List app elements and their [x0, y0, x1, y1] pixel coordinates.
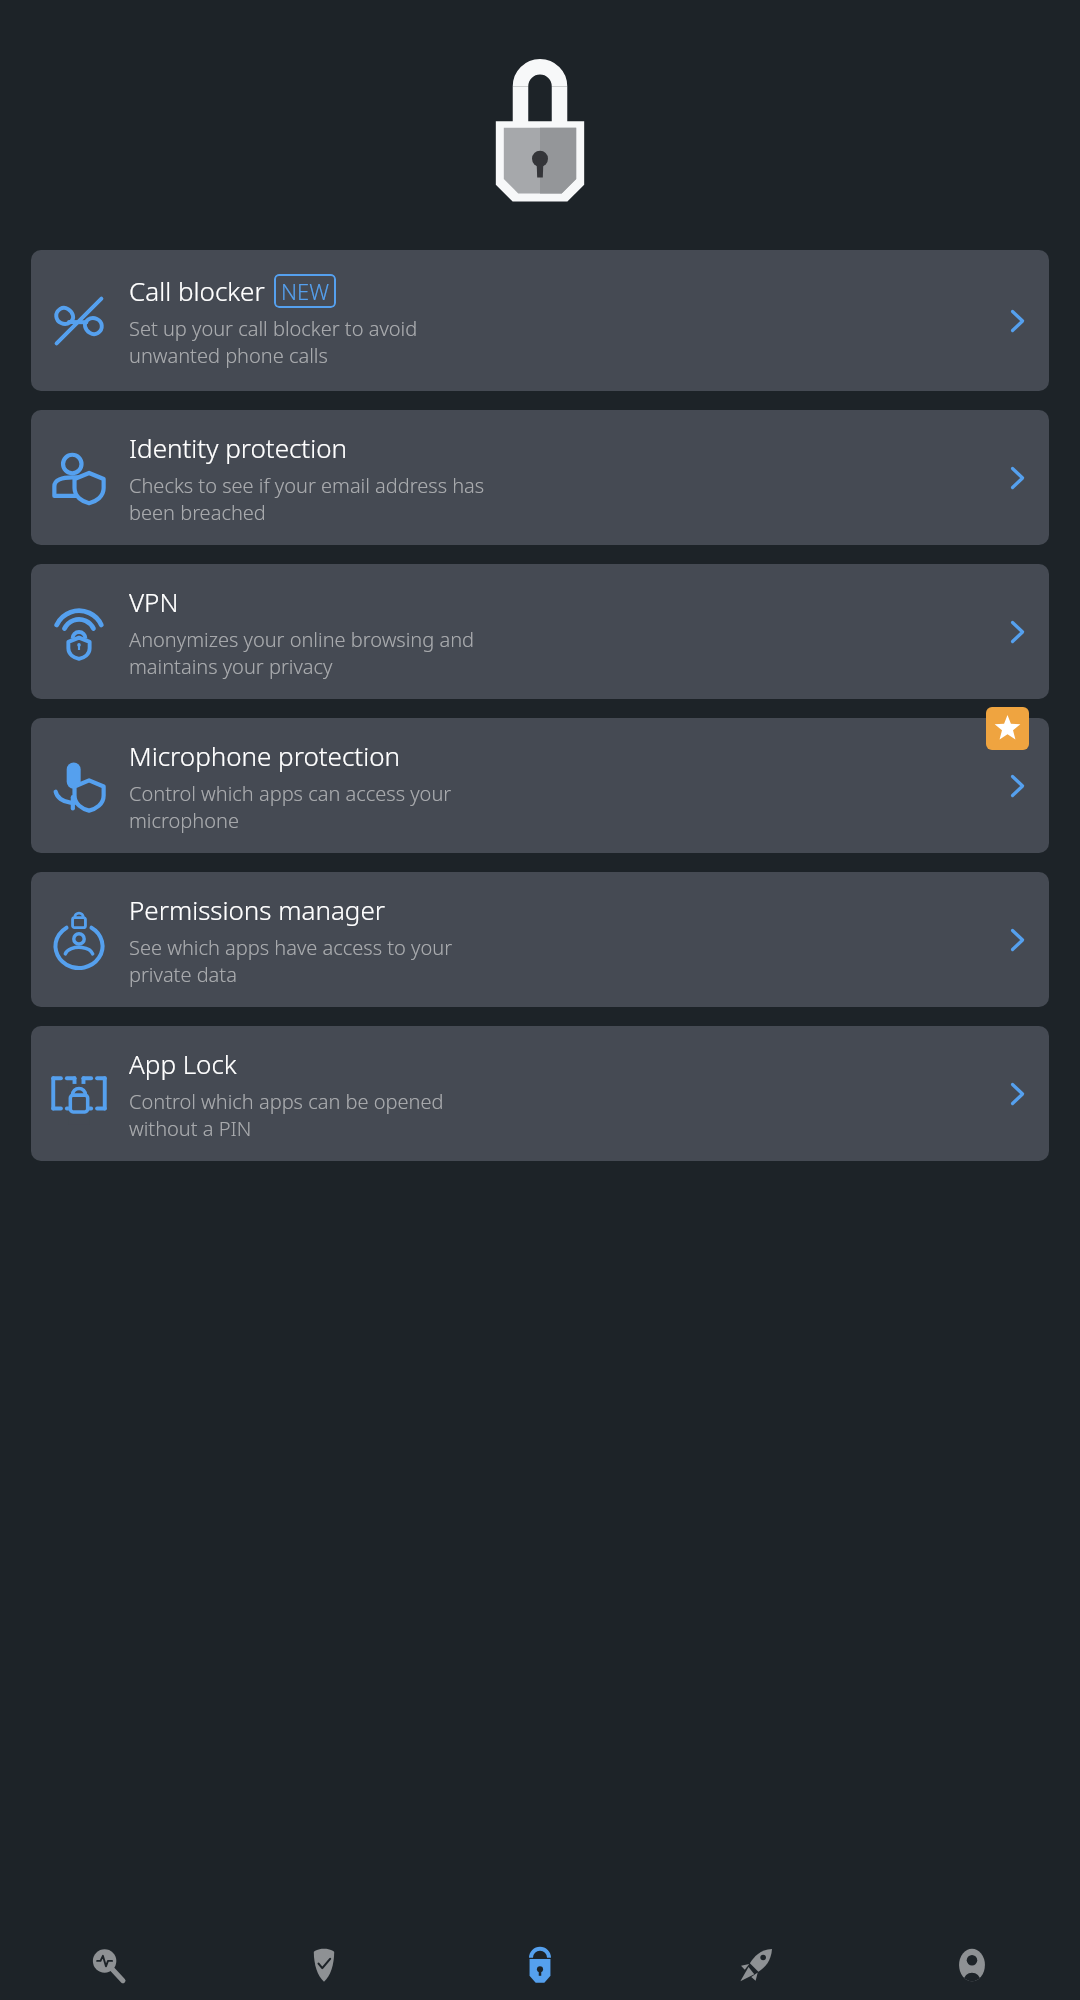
staticText: Checks to see if your email address has … [129, 472, 485, 526]
button[interactable]: Call blocker [31, 250, 1049, 391]
button[interactable]: Premium feature [986, 707, 1029, 750]
button[interactable]: App Lock [31, 1026, 1049, 1161]
other: Open Permissions manager [1003, 926, 1031, 954]
staticText: Permissions manager [129, 892, 385, 927]
staticText: Control which apps can be opened without… [129, 1088, 444, 1142]
other: Open Identity protection [1003, 464, 1031, 492]
other: Open Microphone protection [1003, 772, 1031, 800]
button[interactable]: Scan [0, 1930, 216, 2000]
staticText: NEW [281, 276, 329, 306]
other: Open VPN [1003, 618, 1031, 646]
button[interactable]: VPN [31, 564, 1049, 699]
other: Open App Lock [1003, 1080, 1031, 1108]
other: Privacy lock [493, 53, 587, 203]
button[interactable]: Permissions manager [31, 872, 1049, 1007]
staticText: VPN [129, 584, 179, 619]
staticText: Call blocker [129, 273, 265, 308]
staticText: Control which apps can access your micro… [129, 780, 452, 834]
button[interactable]: Privacy [432, 1930, 648, 2000]
button[interactable]: Identity protection [31, 410, 1049, 545]
button[interactable]: Protection [216, 1930, 432, 2000]
button[interactable]: Performance [648, 1930, 864, 2000]
staticText: See which apps have access to your priva… [129, 934, 453, 988]
other: Open Call blocker [1003, 307, 1031, 335]
staticText: Microphone protection [129, 738, 400, 773]
staticText: Anonymizes your online browsing and main… [129, 626, 475, 680]
staticText: Set up your call blocker to avoid unwant… [129, 315, 418, 369]
button[interactable]: Account [864, 1930, 1080, 2000]
staticText: Identity protection [129, 430, 348, 465]
button[interactable]: Microphone protection [31, 718, 1049, 853]
staticText: App Lock [129, 1046, 237, 1081]
